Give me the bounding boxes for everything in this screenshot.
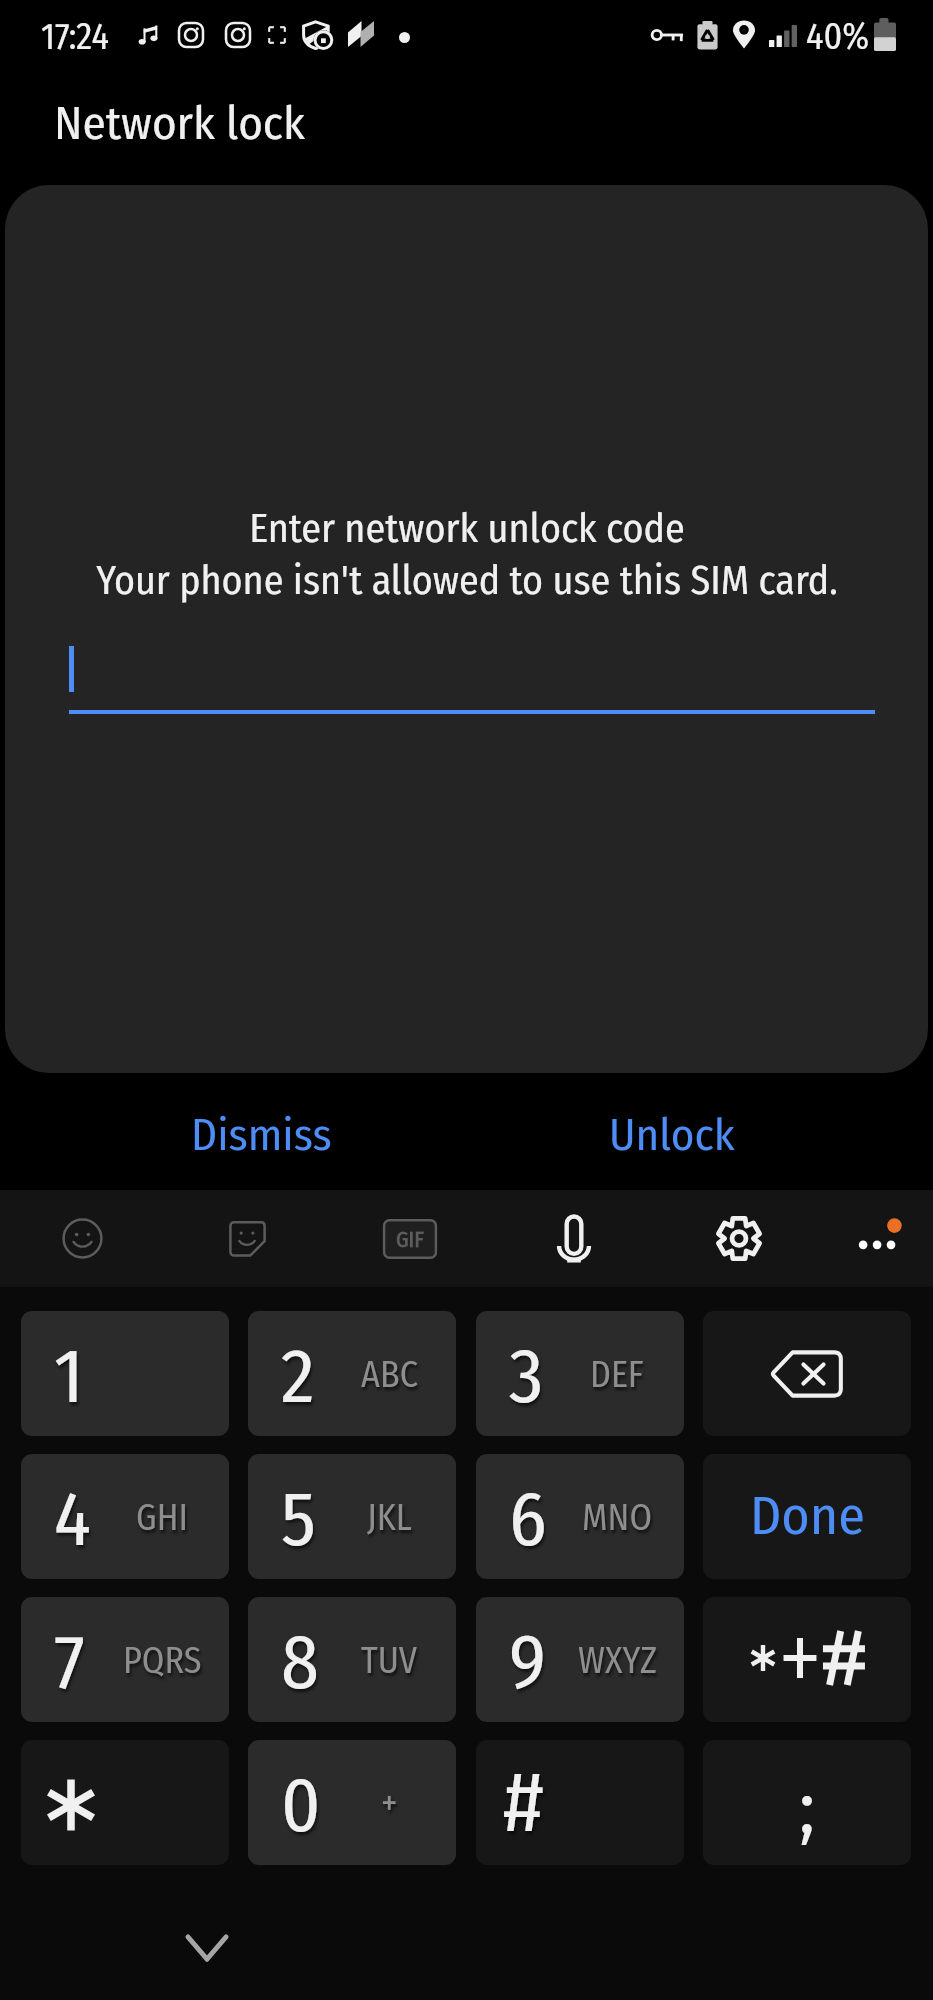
staticText: Done <box>750 1484 865 1549</box>
staticText: GHI <box>136 1496 188 1539</box>
button[interactable]: GIF <box>362 1190 458 1287</box>
staticText: 4 <box>54 1474 91 1565</box>
button[interactable] <box>703 1597 911 1722</box>
button[interactable]: Hide keyboard <box>167 1908 247 1988</box>
button[interactable]: 3 <box>476 1311 684 1436</box>
staticText: 40% <box>806 15 870 58</box>
button[interactable]: Settings <box>691 1190 787 1287</box>
staticText: Unlock <box>609 1108 735 1162</box>
staticText: 17:24 <box>41 15 109 58</box>
staticText: 5 <box>281 1474 316 1565</box>
button[interactable]: Done <box>703 1454 911 1579</box>
staticText: 2 <box>281 1331 315 1422</box>
button[interactable]: 9 <box>476 1597 684 1722</box>
button[interactable]: 7 <box>21 1597 229 1722</box>
staticText: DEF <box>590 1353 644 1396</box>
button[interactable]: 1 <box>21 1311 229 1436</box>
staticText: WXYZ <box>578 1639 657 1682</box>
staticText: Network lock <box>54 95 305 151</box>
staticText: JKL <box>367 1496 412 1539</box>
staticText: # <box>503 1751 544 1854</box>
button[interactable]: ; <box>703 1740 911 1865</box>
staticText: 0 <box>281 1760 321 1851</box>
button[interactable]: 5 <box>248 1454 456 1579</box>
staticText: 9 <box>509 1617 546 1708</box>
button[interactable]: Unlock <box>466 1076 877 1193</box>
button[interactable]: Dismiss <box>56 1076 466 1193</box>
button[interactable]: Stickers <box>199 1190 295 1287</box>
staticText: GIF <box>396 1226 425 1252</box>
button[interactable]: Emoji <box>34 1190 130 1287</box>
button[interactable]: 2 <box>248 1311 456 1436</box>
button[interactable]: 4 <box>21 1454 229 1579</box>
staticText: + <box>381 1782 398 1825</box>
staticText: 1 <box>54 1331 84 1422</box>
staticText: MNO <box>582 1496 653 1539</box>
staticText: 7 <box>54 1617 85 1708</box>
staticText: Enter network unlock code <box>249 505 685 553</box>
button[interactable] <box>21 1740 229 1865</box>
staticText: 8 <box>281 1617 319 1708</box>
button[interactable]: 6 <box>476 1454 684 1579</box>
staticText: 3 <box>509 1331 544 1422</box>
button[interactable]: Voice input <box>526 1190 622 1287</box>
staticText: TUV <box>361 1639 418 1682</box>
button[interactable]: Backspace <box>703 1311 911 1436</box>
button[interactable]: More options <box>839 1190 933 1287</box>
staticText: Dismiss <box>191 1108 332 1162</box>
staticText: PQRS <box>123 1639 202 1682</box>
button[interactable]: 0 <box>248 1740 456 1865</box>
button[interactable]: # <box>476 1740 684 1865</box>
staticText: Your phone isn't allowed to use this SIM… <box>96 557 838 605</box>
staticText: ; <box>799 1762 816 1853</box>
staticText: ABC <box>361 1353 418 1396</box>
staticText: 6 <box>509 1474 547 1565</box>
button[interactable]: 8 <box>248 1597 456 1722</box>
